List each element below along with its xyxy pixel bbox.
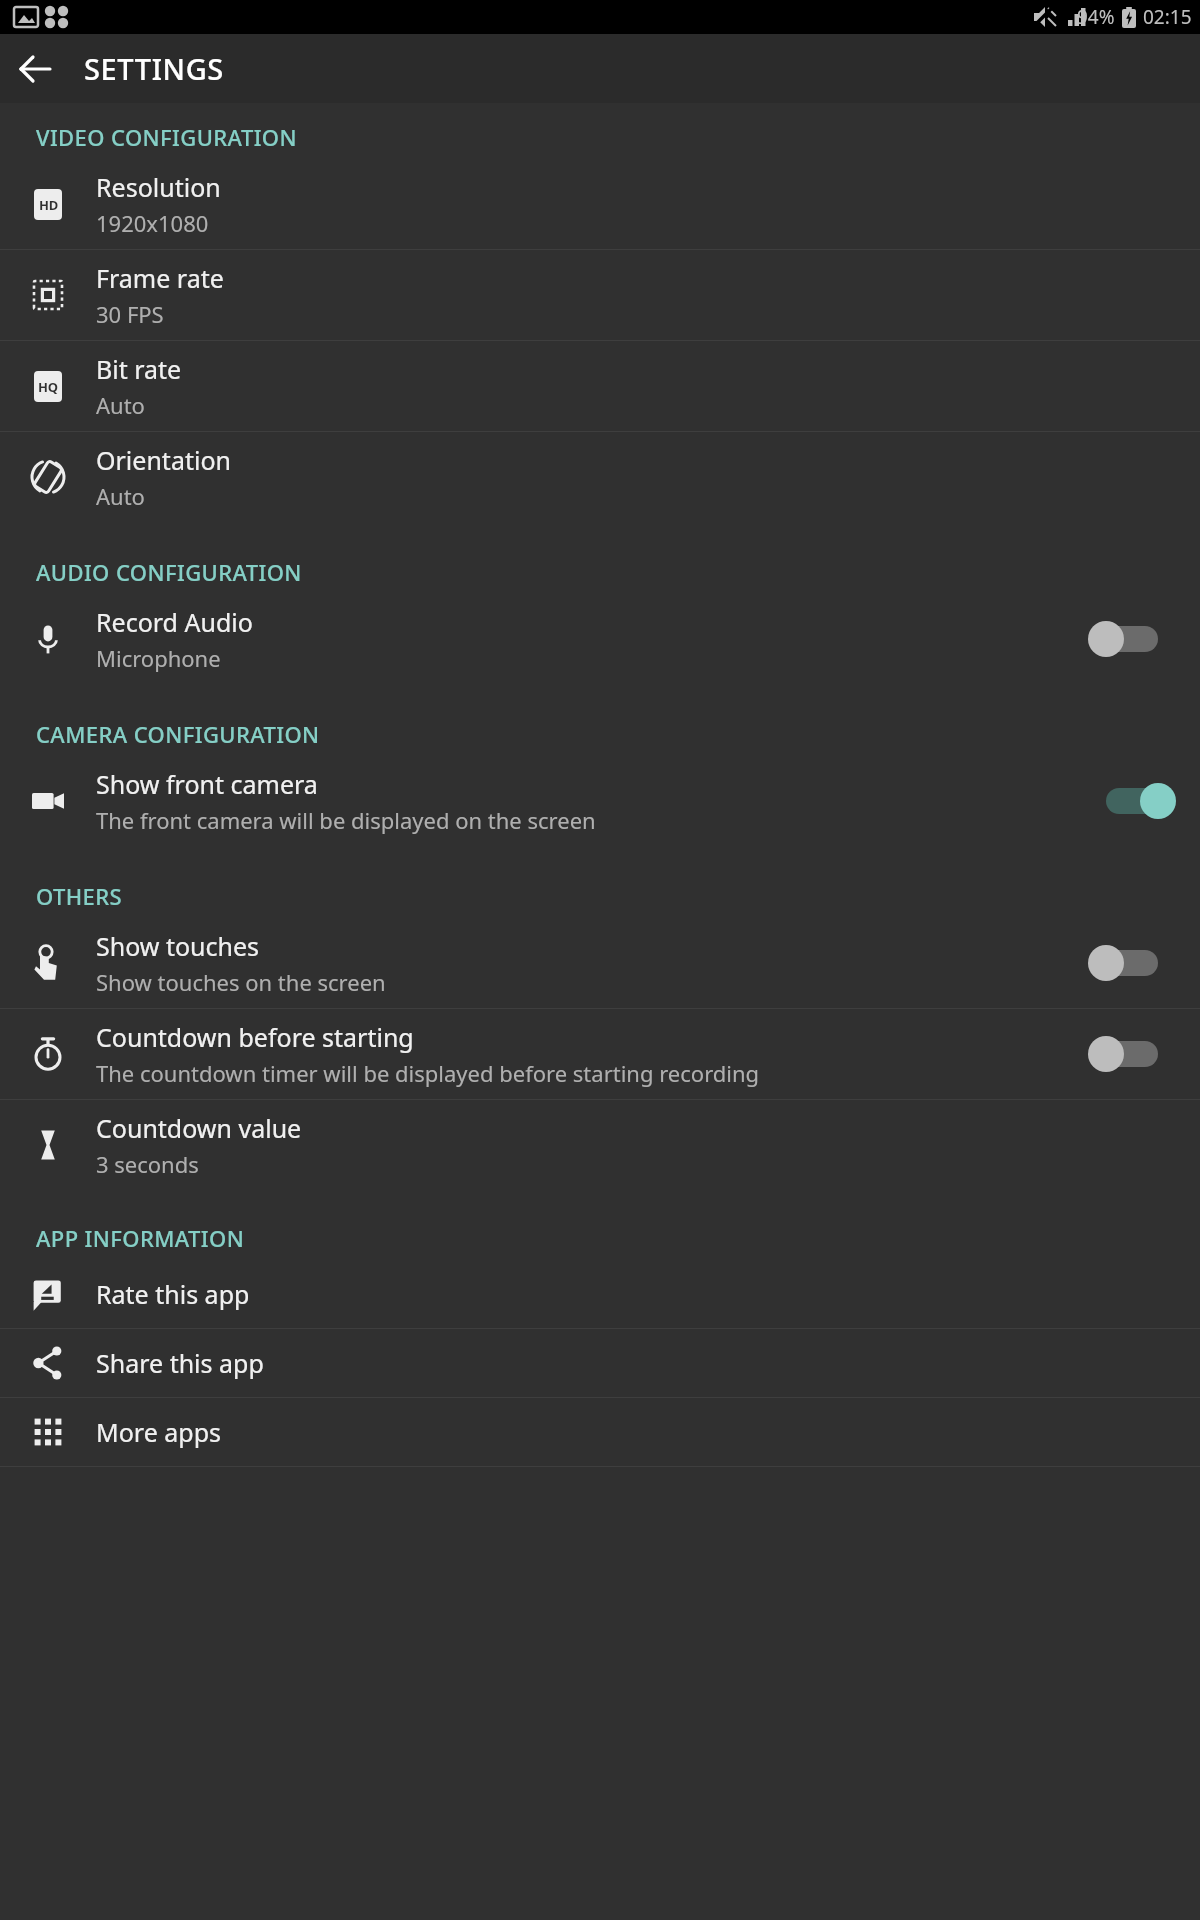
button[interactable]: Back xyxy=(10,44,60,94)
staticText: Microphone xyxy=(96,643,221,673)
staticText: Bit rate xyxy=(96,352,182,386)
button[interactable]: Countdown before starting xyxy=(1094,1029,1170,1079)
staticText: The front camera will be displayed on th… xyxy=(96,805,596,835)
staticText: Orientation xyxy=(96,443,231,477)
staticText: 3 seconds xyxy=(96,1149,199,1179)
button[interactable]: Record Audio xyxy=(0,594,1200,684)
staticText: 02:15 xyxy=(1143,4,1192,30)
staticText: The countdown timer will be displayed be… xyxy=(96,1058,760,1088)
staticText: More apps xyxy=(96,1415,221,1449)
staticText: Countdown before starting xyxy=(96,1020,414,1054)
button[interactable]: Record Audio xyxy=(1094,614,1170,664)
staticText: AUDIO CONFIGURATION xyxy=(36,557,302,587)
staticText: Share this app xyxy=(96,1346,264,1380)
staticText: Rate this app xyxy=(96,1277,250,1311)
staticText: 30 FPS xyxy=(96,299,164,329)
staticText: APP INFORMATION xyxy=(36,1223,245,1253)
staticText: Show touches xyxy=(96,929,260,963)
button[interactable]: Countdown before starting xyxy=(0,1009,1200,1099)
button[interactable]: Rate this app xyxy=(0,1260,1200,1328)
button[interactable]: Countdown value xyxy=(0,1100,1200,1190)
staticText: VIDEO CONFIGURATION xyxy=(36,122,297,152)
staticText: Resolution xyxy=(96,170,221,204)
staticText: Record Audio xyxy=(96,605,253,639)
button[interactable]: Show touches xyxy=(1094,938,1170,988)
staticText: Countdown value xyxy=(96,1111,302,1145)
staticText: Auto xyxy=(96,390,145,420)
staticText: Frame rate xyxy=(96,261,224,295)
button[interactable]: Show touches xyxy=(0,918,1200,1008)
button[interactable]: Orientation xyxy=(0,432,1200,522)
staticText: 1920x1080 xyxy=(96,208,209,238)
staticText: HD xyxy=(39,196,58,214)
button[interactable]: HD xyxy=(0,159,1200,249)
button[interactable]: Share this app xyxy=(0,1329,1200,1397)
button[interactable]: HQ xyxy=(0,341,1200,431)
staticText: Auto xyxy=(96,481,145,511)
staticText: Show touches on the screen xyxy=(96,967,386,997)
staticText: OTHERS xyxy=(36,881,123,911)
button[interactable]: Frame rate xyxy=(0,250,1200,340)
staticText: HQ xyxy=(38,378,58,396)
staticText: 94% xyxy=(1077,4,1115,30)
button[interactable]: Show front camera xyxy=(0,756,1200,846)
staticText: Show front camera xyxy=(96,767,318,801)
staticText: SETTINGS xyxy=(84,49,224,88)
button[interactable]: Show front camera xyxy=(1094,776,1170,826)
staticText: CAMERA CONFIGURATION xyxy=(36,719,320,749)
button[interactable]: More apps xyxy=(0,1398,1200,1466)
